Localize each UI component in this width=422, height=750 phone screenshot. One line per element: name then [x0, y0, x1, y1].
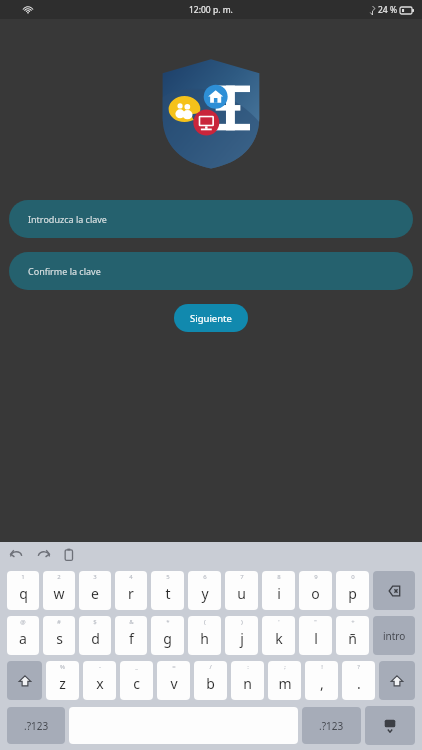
staticText: d: [91, 629, 100, 648]
staticText: Siguiente: [190, 312, 232, 325]
staticText: 1: [21, 573, 25, 581]
staticText: k: [275, 629, 283, 648]
staticText: j: [240, 629, 244, 648]
button[interactable]: -: [83, 661, 116, 700]
button[interactable]: 2: [43, 571, 75, 610]
staticText: ñ: [348, 629, 357, 648]
staticText: intro: [383, 629, 406, 643]
staticText: ": [314, 618, 317, 626]
button[interactable]: ': [262, 616, 295, 655]
staticText: 4: [129, 573, 133, 581]
staticText: 5: [166, 573, 170, 581]
staticText: t: [165, 584, 171, 603]
staticText: 7: [240, 573, 244, 581]
button[interactable]: $: [79, 616, 111, 655]
button[interactable]: /: [194, 661, 227, 700]
staticText: $: [93, 618, 97, 626]
button[interactable]: Introduzca la clave: [9, 200, 413, 238]
button[interactable]: .?123: [302, 707, 361, 744]
button[interactable]: %: [46, 661, 79, 700]
button[interactable]: ": [299, 616, 332, 655]
button[interactable]: 6: [188, 571, 221, 610]
staticText: o: [311, 584, 320, 603]
staticText: @: [20, 618, 26, 626]
staticText: ): [241, 618, 243, 626]
staticText: a: [19, 629, 27, 648]
button[interactable]: +: [336, 616, 369, 655]
button[interactable]: intro: [373, 616, 415, 655]
button[interactable]: 8: [262, 571, 295, 610]
button[interactable]: Clipboard: [61, 547, 77, 563]
staticText: u: [237, 584, 246, 603]
button[interactable]: Redo: [35, 547, 51, 563]
button[interactable]: ;: [268, 661, 301, 700]
button[interactable]: 1: [7, 571, 39, 610]
staticText: 6: [203, 573, 207, 581]
staticText: m: [278, 674, 292, 693]
button[interactable]: Siguiente: [174, 304, 248, 332]
button[interactable]: *: [151, 616, 184, 655]
staticText: 0: [351, 573, 355, 581]
staticText: l: [314, 629, 318, 648]
staticText: 2: [57, 573, 61, 581]
button[interactable]: _: [120, 661, 153, 700]
staticText: _: [135, 663, 138, 671]
staticText: =: [172, 663, 176, 671]
button[interactable]: Undo: [9, 547, 25, 563]
staticText: 3: [93, 573, 97, 581]
button[interactable]: :: [231, 661, 264, 700]
button[interactable]: Backspace: [373, 571, 415, 610]
staticText: &: [129, 618, 134, 626]
button[interactable]: !: [305, 661, 338, 700]
button[interactable]: @: [7, 616, 39, 655]
staticText: h: [200, 629, 209, 648]
button[interactable]: Shift: [7, 661, 42, 700]
button[interactable]: (: [188, 616, 221, 655]
button[interactable]: Hide keyboard: [365, 706, 415, 745]
staticText: c: [133, 674, 140, 693]
staticText: (: [204, 618, 206, 626]
button[interactable]: &: [115, 616, 147, 655]
staticText: 24 %: [378, 4, 397, 16]
staticText: q: [19, 584, 28, 603]
staticText: g: [163, 629, 172, 648]
button[interactable]: Confirme la clave: [9, 252, 413, 290]
button[interactable]: 7: [225, 571, 258, 610]
button[interactable]: 0: [336, 571, 369, 610]
button[interactable]: Shift: [379, 661, 415, 700]
staticText: r: [128, 584, 134, 603]
button[interactable]: ?: [342, 661, 375, 700]
button[interactable]: =: [157, 661, 190, 700]
staticText: x: [96, 674, 104, 693]
staticText: w: [53, 584, 65, 603]
staticText: !: [321, 663, 323, 671]
staticText: .: [357, 674, 361, 693]
staticText: 9: [314, 573, 318, 581]
staticText: 12:00 p. m.: [189, 4, 233, 16]
staticText: Confirme la clave: [28, 265, 101, 277]
staticText: f: [129, 629, 134, 648]
staticText: y: [201, 584, 209, 603]
staticText: s: [56, 629, 63, 648]
staticText: e: [91, 584, 99, 603]
staticText: 8: [277, 573, 281, 581]
staticText: p: [348, 584, 357, 603]
staticText: ;: [284, 663, 286, 671]
button[interactable]: .?123: [7, 707, 65, 744]
staticText: ': [278, 618, 280, 626]
staticText: .?123: [319, 719, 344, 733]
staticText: *: [166, 618, 170, 626]
button[interactable]: 3: [79, 571, 111, 610]
button[interactable]: #: [43, 616, 75, 655]
staticText: ,: [320, 674, 324, 693]
staticText: #: [57, 618, 61, 626]
button[interactable]: 4: [115, 571, 147, 610]
button[interactable]: 5: [151, 571, 184, 610]
staticText: %: [60, 663, 65, 671]
staticText: n: [243, 674, 252, 693]
button[interactable]: 9: [299, 571, 332, 610]
staticText: v: [170, 674, 178, 693]
button[interactable]: ): [225, 616, 258, 655]
staticText: z: [59, 674, 66, 693]
